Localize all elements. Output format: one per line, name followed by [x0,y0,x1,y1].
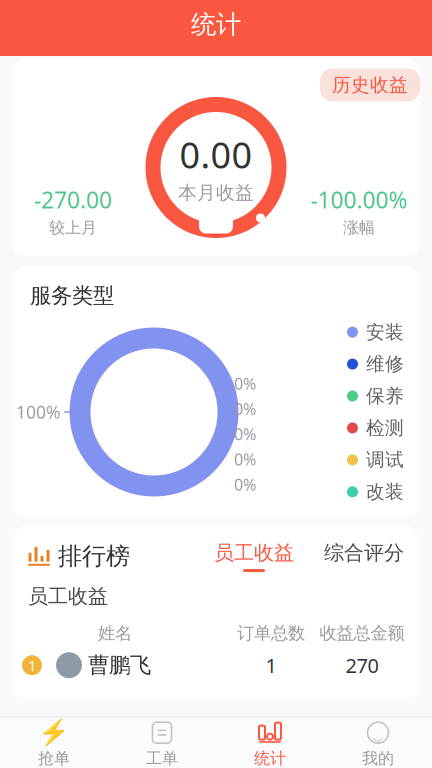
staticText: 抢单 [38,749,70,768]
staticText: 员工收益 [214,540,294,565]
staticText: 0% [234,398,256,419]
staticText: 检测 [366,416,404,439]
staticText: 0% [234,474,256,495]
staticText: 服务类型 [30,282,114,309]
button[interactable]: 工单 [108,717,216,768]
staticText: 调试 [366,448,404,471]
staticText: 收益总金额 [319,623,404,644]
staticText: 0% [234,449,256,470]
staticText: 本月收益 [178,181,254,204]
staticText: 涨幅 [343,218,375,237]
staticText: -100.00% [310,185,407,215]
staticText: 我的 [362,749,394,768]
staticText: 100% [16,400,60,423]
staticText: ‿ [372,719,383,742]
staticText: -270.00 [34,185,112,215]
staticText: 订单总数 [237,623,305,644]
button[interactable]: 综合评分 [324,540,404,572]
button[interactable]: ⚡ [0,717,108,768]
staticText: 维修 [366,353,404,375]
staticText: 1 [265,652,276,678]
staticText: 统计 [191,9,241,40]
staticText: 1 [28,655,36,675]
staticText: 历史收益 [332,73,408,96]
staticText: 排行榜 [58,541,130,571]
button[interactable]: 历史收益 [320,68,420,101]
staticText: 改装 [366,480,404,503]
button[interactable]: 统计 [216,717,324,768]
staticText: 曹鹏飞 [88,652,151,678]
button[interactable]: 1 [12,644,420,678]
staticText: 工单 [146,749,178,768]
staticText: 0% [234,423,256,445]
staticText: 270 [345,652,378,678]
button[interactable]: ‿ [324,717,432,768]
staticText: 员工收益 [28,584,108,609]
staticText: ⚡ [38,718,70,747]
staticText: 保养 [366,385,404,407]
staticText: 统计 [254,749,286,768]
staticText: 较上月 [49,218,97,237]
staticText: 姓名 [98,623,132,644]
staticText: 0.00 [179,131,252,178]
button[interactable]: 员工收益 [214,540,294,572]
staticText: 0% [234,373,256,394]
staticText: 综合评分 [324,540,404,565]
staticText: 安装 [366,321,404,344]
